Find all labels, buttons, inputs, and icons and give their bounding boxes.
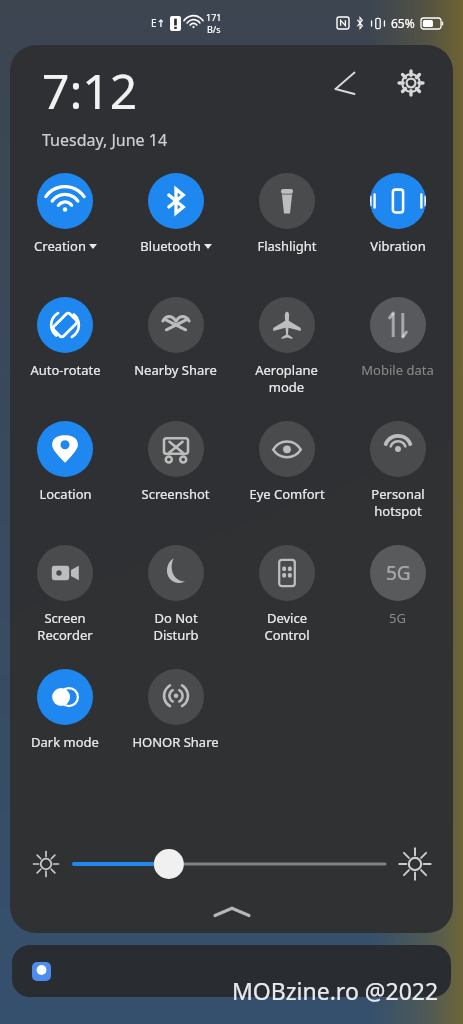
staticText: Personal hotspot [371, 485, 425, 520]
button[interactable]: Flashlight [231, 167, 342, 291]
button[interactable]: Dark mode [10, 663, 120, 767]
button[interactable]: Screenshot [120, 415, 231, 539]
staticText: Screen Recorder [37, 609, 93, 644]
staticText: Screenshot [141, 485, 210, 503]
staticText: Mobile data [361, 361, 434, 379]
staticText: Creation [34, 237, 86, 255]
staticText: 5G [386, 560, 411, 586]
button[interactable]: Screen Recorder [10, 539, 120, 663]
staticText: Device Control [264, 609, 310, 644]
staticText: Nearby Share [134, 361, 217, 379]
button[interactable]: Aeroplane mode [231, 291, 342, 415]
button[interactable]: Auto-rotate [10, 291, 120, 415]
button[interactable]: Settings [391, 63, 431, 103]
button[interactable]: Nearby Share [120, 291, 231, 415]
button[interactable]: Location [10, 415, 120, 539]
button[interactable] [12, 945, 451, 997]
staticText: Vibration [370, 237, 426, 255]
staticText: B/s [207, 23, 221, 35]
staticText: Tuesday, June 14 [42, 129, 168, 151]
button[interactable]: Do Not Disturb [120, 539, 231, 663]
button[interactable]: Creation [10, 167, 120, 291]
staticText: Dark mode [31, 733, 99, 751]
staticText: Aeroplane mode [255, 361, 318, 396]
button[interactable]: Personal hotspot [342, 415, 453, 539]
button[interactable]: Bluetooth [120, 167, 231, 291]
staticText: Do Not Disturb [153, 609, 199, 644]
staticText: 65% [391, 15, 415, 31]
button[interactable]: Vibration [342, 167, 453, 291]
button[interactable]: Eye Comfort [231, 415, 342, 539]
button[interactable]: HONOR Share [120, 663, 231, 767]
button[interactable]: 5G [342, 539, 453, 663]
staticText: 5G [389, 609, 406, 627]
button[interactable]: Collapse [10, 903, 453, 921]
staticText: Auto-rotate [30, 361, 101, 379]
staticText: Bluetooth [140, 237, 201, 255]
staticText: 7:12 [42, 58, 138, 123]
staticText: Eye Comfort [249, 485, 325, 503]
button[interactable]: Device Control [231, 539, 342, 663]
staticText: E↑ [151, 16, 165, 30]
staticText: MOBzine.ro @2022 [232, 975, 439, 1006]
staticText: 171 [206, 11, 222, 23]
button[interactable]: Edit [325, 63, 365, 103]
button[interactable] [74, 835, 385, 893]
staticText: Location [39, 485, 92, 503]
staticText: HONOR Share [132, 733, 219, 751]
button[interactable]: Mobile data [342, 291, 453, 415]
staticText: Flashlight [257, 237, 317, 255]
